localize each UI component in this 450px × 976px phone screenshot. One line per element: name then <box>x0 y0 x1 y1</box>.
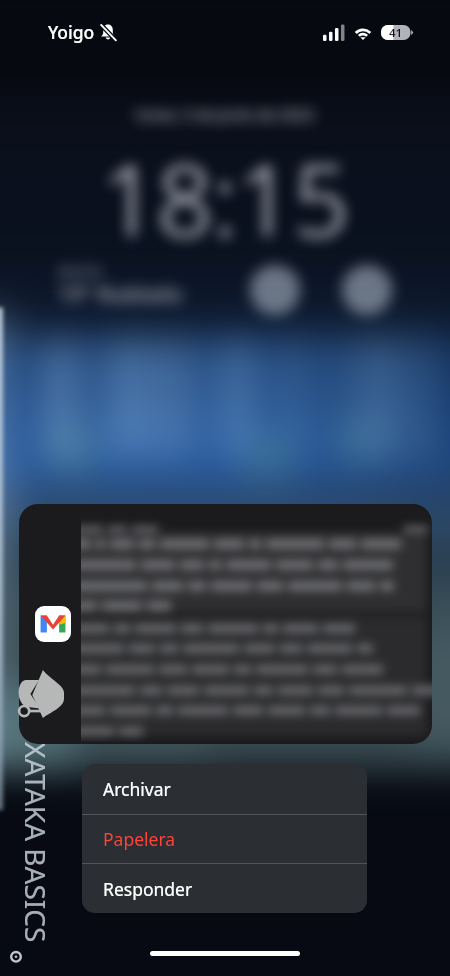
staticText: 18:15 <box>101 131 349 264</box>
staticText: XATAKA BASICS <box>17 742 55 943</box>
staticText: lunes, 5 de junio de 2023 <box>136 104 314 124</box>
button[interactable]: Responder <box>82 864 367 913</box>
staticText: Papelera <box>103 827 176 851</box>
other: Xataka Basics <box>16 670 64 718</box>
button[interactable] <box>19 504 432 744</box>
staticText: Responder <box>103 877 193 901</box>
staticText: 19° Nublado <box>58 280 183 309</box>
button[interactable]: Archivar <box>82 764 367 814</box>
staticText: Madrid <box>58 262 102 280</box>
staticText: Yoigo <box>48 20 95 44</box>
other: Silent mode <box>98 22 118 42</box>
staticText: 41 <box>389 25 403 40</box>
staticText: Archivar <box>103 777 171 801</box>
other: Wi-Fi <box>353 25 373 41</box>
button[interactable]: Papelera <box>82 815 367 863</box>
